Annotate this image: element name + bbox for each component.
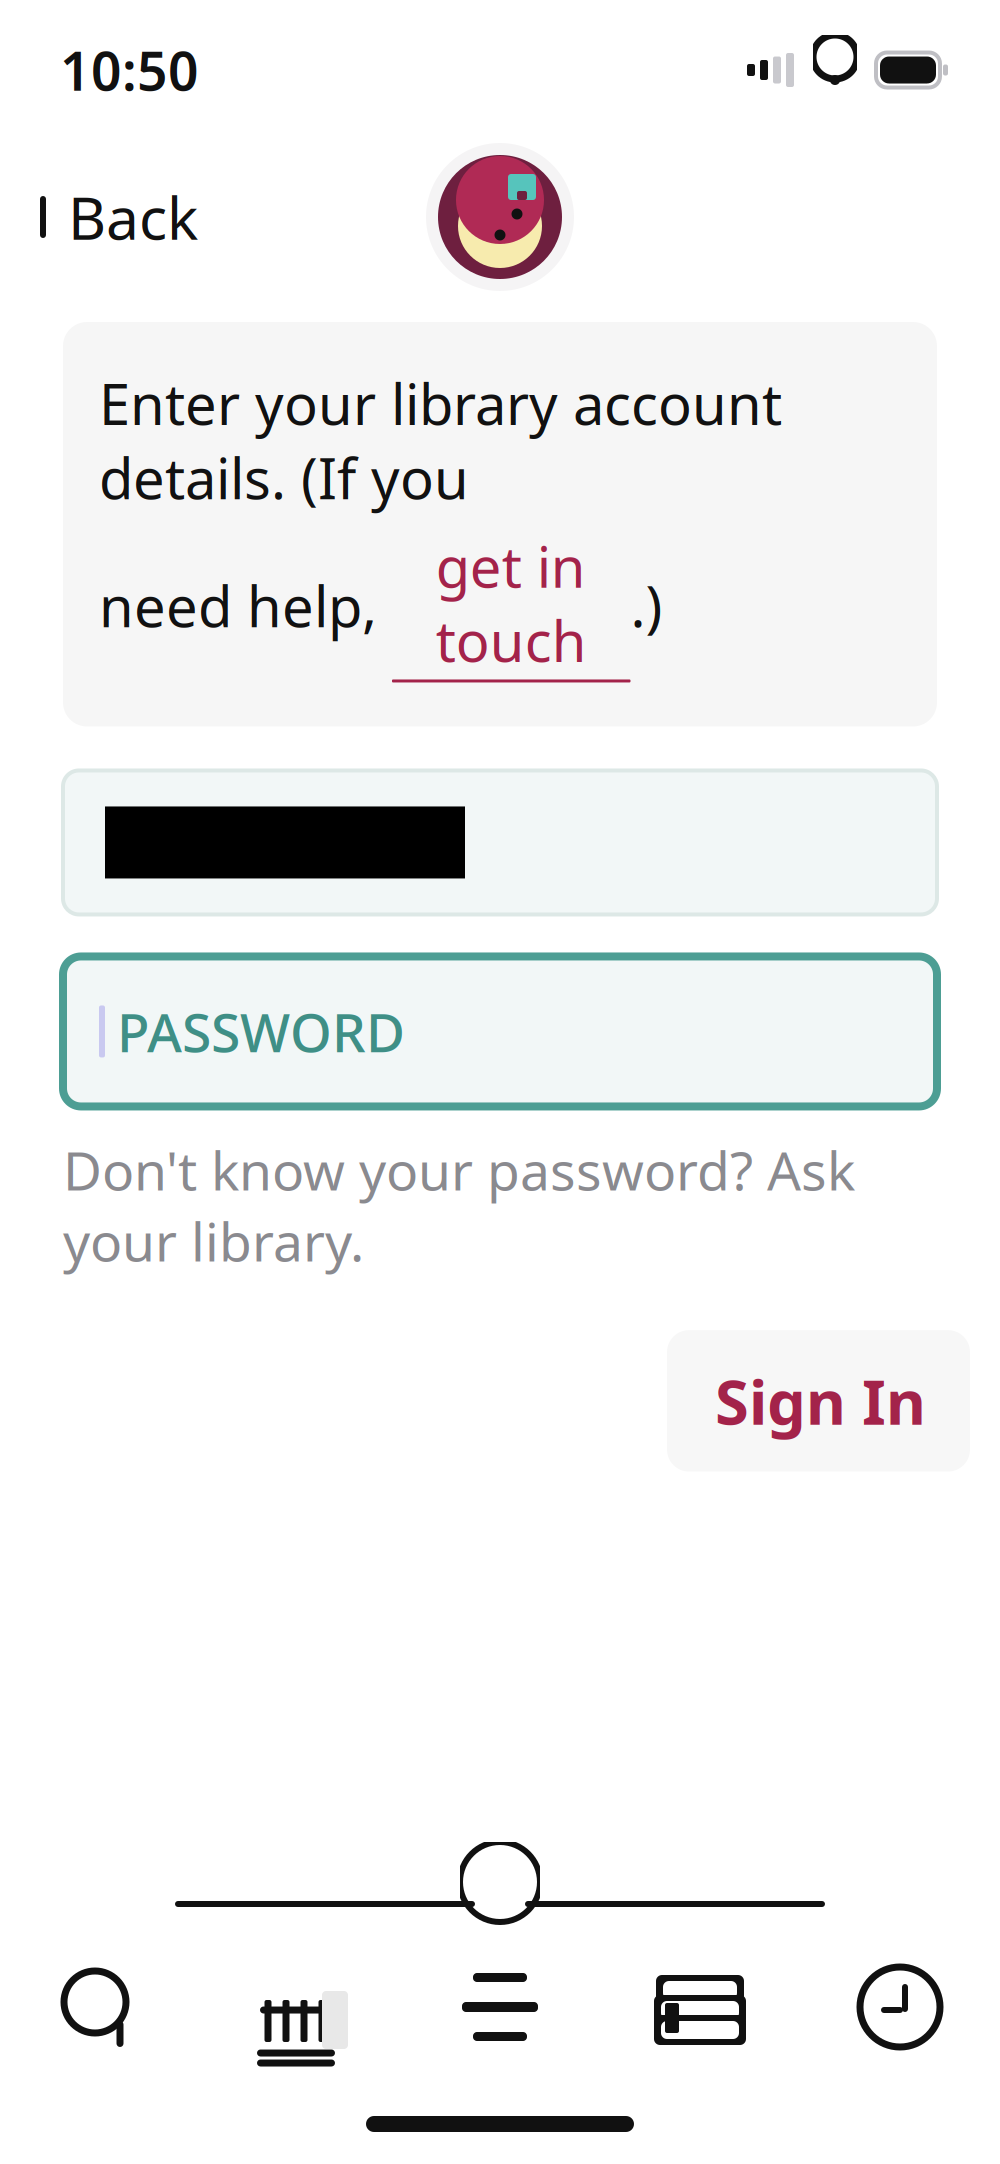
button[interactable] (63, 770, 937, 914)
staticText: 10:50 (60, 35, 199, 105)
button[interactable]: PASSWORD (63, 956, 937, 1106)
staticText: Sign In (715, 1360, 926, 1441)
staticText: Back (68, 178, 198, 256)
staticText: .) (630, 568, 662, 643)
staticText: get in touch (436, 529, 587, 677)
staticText: Enter your library account details. (If … (99, 366, 782, 515)
button[interactable]: Sign In (667, 1330, 970, 1471)
button[interactable]: Back (28, 164, 206, 270)
staticText: Don't know your password? Ask your libra… (63, 1134, 855, 1276)
button[interactable]: Shelf (600, 1952, 800, 2062)
button[interactable]: Timeline (800, 1952, 1000, 2062)
staticText: PASSWORD (117, 996, 405, 1067)
button[interactable]: get in touch (392, 529, 630, 682)
staticText: need help, (99, 568, 392, 643)
button[interactable]: Menu (400, 1952, 600, 2062)
button[interactable]: Library (200, 1952, 400, 2062)
button[interactable]: Search (0, 1952, 200, 2062)
